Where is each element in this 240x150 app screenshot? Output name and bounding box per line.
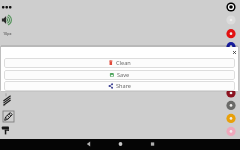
staticText: Save (117, 71, 130, 79)
button[interactable]: Recent apps (149, 139, 156, 150)
button[interactable]: Colour 4 (226, 42, 237, 53)
button[interactable]: More options (0, 1, 16, 12)
button[interactable]: Home (117, 139, 124, 150)
button[interactable]: Eraser (2, 93, 14, 107)
button[interactable]: Sound (1, 15, 14, 27)
button[interactable]: Colour 8 (226, 126, 237, 137)
staticText: 10px (3, 31, 12, 36)
button[interactable]: Close (230, 48, 239, 57)
button[interactable]: Pen (3, 111, 14, 122)
staticText: Clean (116, 59, 131, 67)
button[interactable]: Colour 2 (226, 15, 237, 26)
button[interactable]: Colour 5 (226, 88, 237, 99)
button[interactable]: Colour 1 (226, 2, 237, 13)
button[interactable]: Share (4, 81, 235, 91)
button[interactable]: Clean (4, 58, 235, 68)
button[interactable]: Back (85, 139, 92, 150)
button[interactable]: Colour 7 (226, 113, 237, 124)
staticText: Share (116, 82, 132, 90)
button[interactable]: Colour 6 (226, 100, 237, 111)
button[interactable]: Save (4, 70, 235, 80)
button[interactable]: Colour 3 (226, 29, 237, 40)
button[interactable]: Fill (1, 125, 13, 136)
